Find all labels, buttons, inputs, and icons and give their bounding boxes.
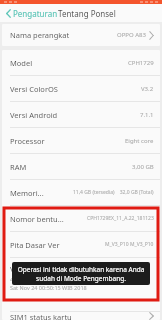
staticText: Model	[10, 58, 33, 68]
button[interactable]: Nomor bentu...	[2, 206, 160, 231]
staticText: CPH1729EX_11_A.22_181123	[87, 215, 154, 222]
button[interactable]: Versi Android	[2, 102, 160, 127]
staticText: Processor	[10, 136, 45, 146]
staticText: 11,4 GB (tersedia) 32,0 GB (Total)	[73, 189, 154, 196]
button[interactable]: Pengaturan	[5, 6, 59, 21]
staticText: Versi ColorOS	[10, 84, 58, 94]
staticText: Nama perangkat	[10, 30, 70, 40]
button[interactable]: Pita Dasar Ver	[2, 232, 160, 257]
staticText: Tentang Ponsel	[58, 8, 116, 19]
button[interactable]: RAM	[2, 154, 160, 179]
button[interactable]: Versi ColorOS	[2, 76, 160, 101]
button[interactable]: Versi kernel	[2, 258, 160, 311]
button[interactable]: Nama perangkat	[2, 24, 160, 46]
staticText: Pita Dasar Ver	[10, 240, 60, 250]
staticText: CPH1729	[128, 59, 154, 67]
staticText: M_V3_P10 M_V3_P10	[105, 241, 154, 248]
staticText: 7.1.1	[140, 111, 154, 119]
staticText: Sat Nov 24 00:50:15 WIB 2018	[10, 284, 87, 291]
staticText: OPPO A83	[117, 31, 146, 39]
button[interactable]: Processor	[2, 128, 160, 153]
staticText: V3.2	[141, 85, 154, 93]
staticText: Pengaturan	[13, 8, 58, 19]
button[interactable]: Model	[2, 50, 160, 75]
staticText: Eight core	[125, 137, 154, 145]
staticText: Operasi ini tidak dibutuhkan karena Anda…	[16, 265, 146, 283]
staticText: RAM	[10, 162, 27, 172]
button[interactable]: SIM1 status kartu	[2, 312, 160, 320]
staticText: SIM1 status kartu	[10, 312, 72, 320]
staticText: Versi Android	[10, 110, 58, 120]
staticText: 4.4.22-G201811232239	[10, 276, 70, 283]
button[interactable]: Memori...	[2, 180, 160, 205]
staticText: Versi kernel	[10, 264, 52, 274]
staticText: Nomor bentu...	[10, 214, 64, 224]
staticText: 3,00 GB	[132, 163, 154, 171]
staticText: Memori...	[10, 188, 44, 198]
